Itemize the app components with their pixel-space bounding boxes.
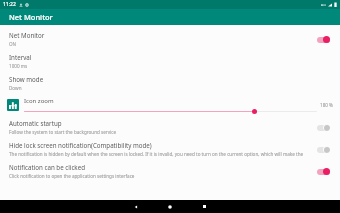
button[interactable]: Back — [122, 200, 150, 213]
button[interactable]: Home — [156, 200, 184, 213]
staticText: ON — [9, 41, 17, 47]
staticText: Follow the system to start the backgroun… — [9, 129, 117, 135]
button[interactable]: Icon zoom — [0, 94, 340, 116]
button[interactable]: Switch on — [316, 35, 331, 44]
staticText: Net Monitor — [9, 31, 45, 39]
button[interactable]: Switch off — [316, 145, 331, 154]
button[interactable]: Switch on — [316, 167, 331, 176]
staticText: Hide lock screen notification(Compatibil… — [9, 141, 152, 149]
staticText: Net Monitor — [9, 12, 53, 22]
staticText: 11:22 — [3, 1, 16, 8]
button[interactable]: Switch off — [316, 123, 331, 132]
button[interactable]: Interval — [0, 50, 340, 72]
staticText: 180 % — [320, 102, 333, 108]
staticText: Icon zoom — [24, 97, 54, 105]
staticText: Down — [9, 85, 22, 91]
button[interactable]: Notification can be clicked — [0, 160, 340, 182]
button[interactable]: Show mode — [0, 72, 340, 94]
staticText: 1000 ms — [9, 63, 28, 69]
button[interactable]: Hide lock screen notification(Compatibil… — [0, 138, 340, 160]
staticText: Interval — [9, 53, 32, 61]
button[interactable]: Recents — [190, 200, 218, 213]
button[interactable]: Net Monitor — [0, 28, 340, 50]
staticText: Automatic startup — [9, 119, 62, 127]
staticText: Notification can be clicked — [9, 163, 85, 171]
staticText: Click notification to open the applicati… — [9, 173, 135, 179]
staticText: The notification is hidden by default wh… — [9, 151, 311, 157]
staticText: Show mode — [9, 75, 44, 83]
button[interactable]: Automatic startup — [0, 116, 340, 138]
